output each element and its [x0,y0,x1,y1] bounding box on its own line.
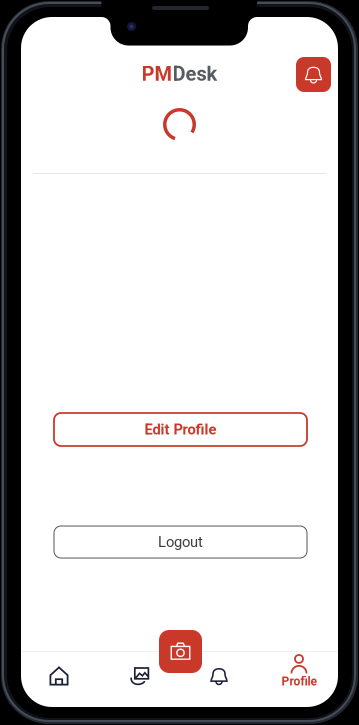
staticText: Logout [158,533,203,551]
button[interactable]: Notifications [191,654,247,698]
staticText: Edit Profile [144,421,216,438]
staticText: Desk [172,62,217,86]
staticText: Profile [281,674,316,689]
button[interactable]: Camera [159,630,202,673]
button[interactable]: Edit Profile [54,413,307,446]
button[interactable]: Gallery [112,654,168,698]
button[interactable]: Profile [271,649,327,693]
button[interactable]: Notifications [296,57,331,92]
button[interactable]: Logout [54,526,307,558]
staticText: PM [141,62,172,86]
button[interactable]: Home [31,654,87,698]
